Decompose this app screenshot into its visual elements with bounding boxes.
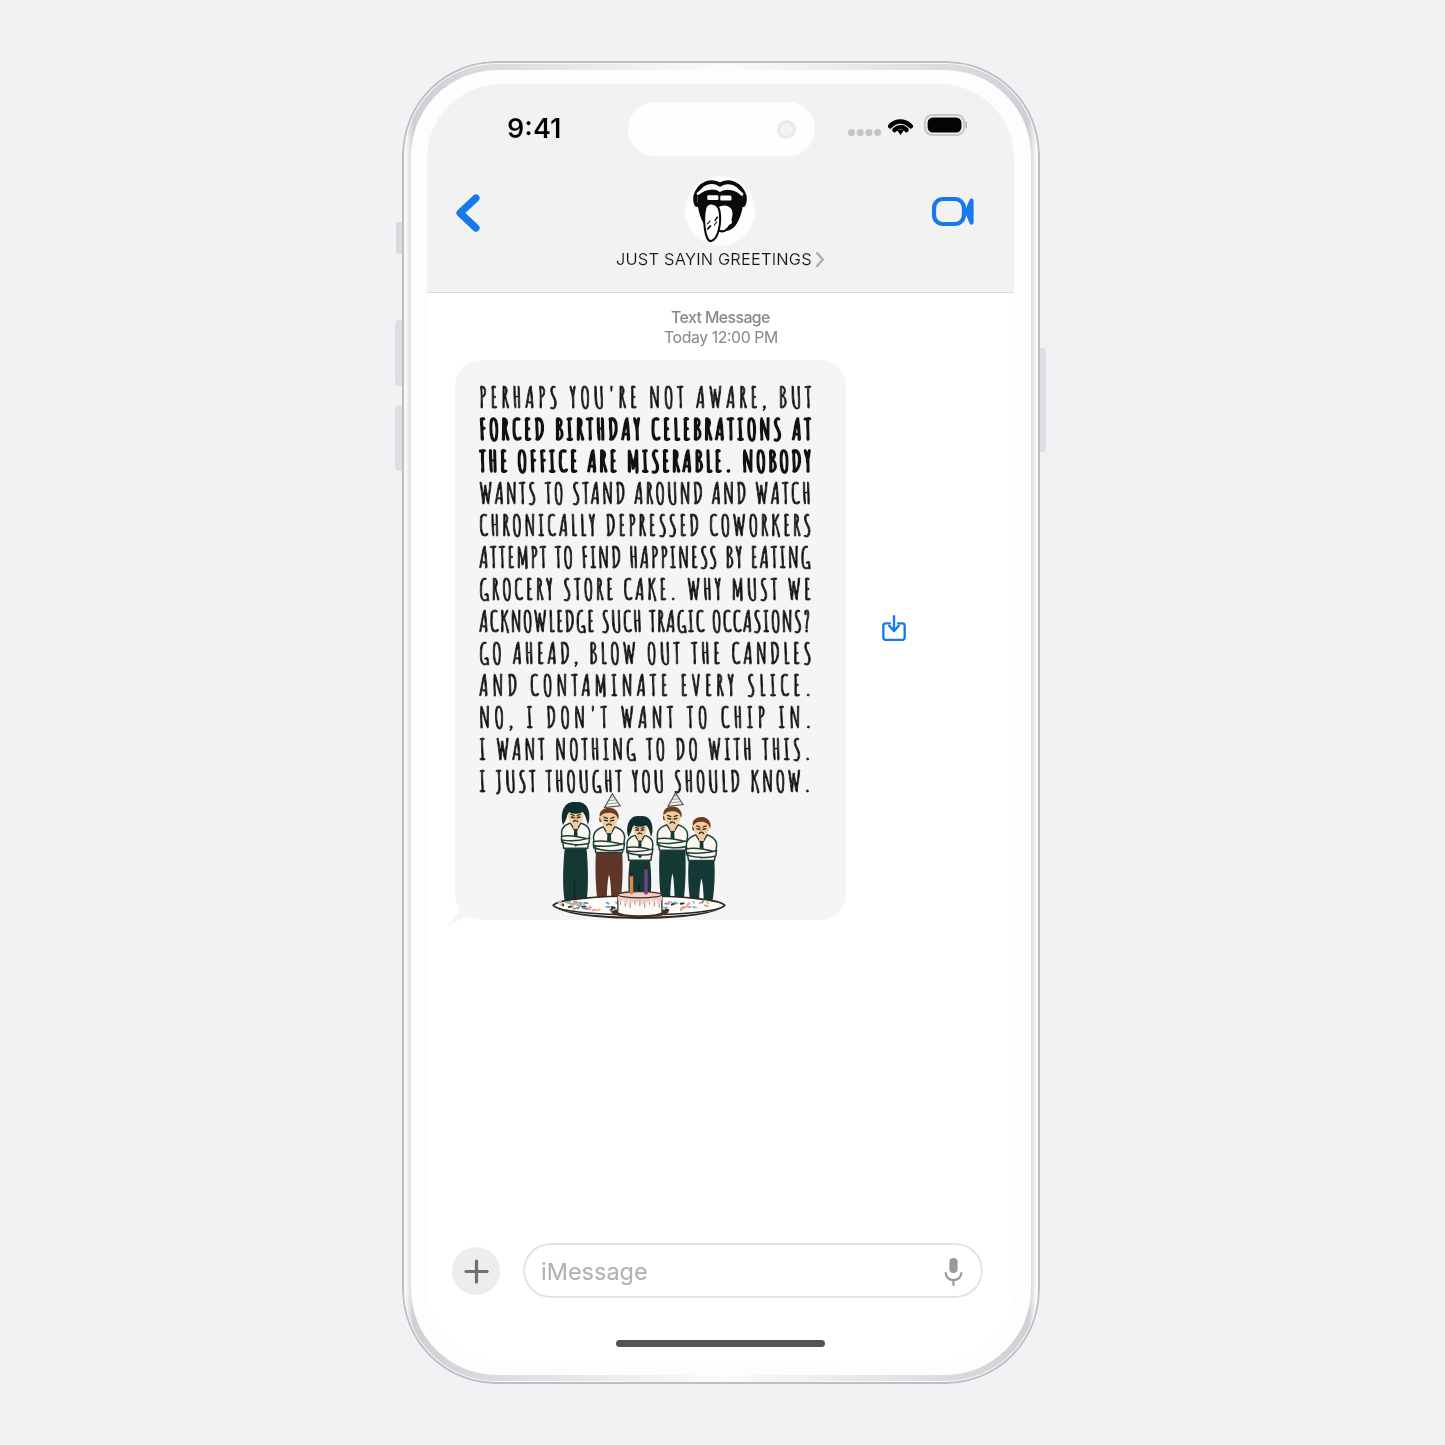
staticText: CHRONICALLY DEPRESSED COWORKERS [479, 508, 814, 540]
staticText: PERHAPS YOU'RE NOT AWARE, BUT [479, 380, 816, 412]
staticText: ACKNOWLEDGE SUCH TRAGIC OCCASIONS? [479, 604, 812, 636]
staticText: GO AHEAD, BLOW OUT THE CANDLES [479, 636, 815, 668]
staticText: CHRONICALLY DEPRESSED COWORKERS [479, 508, 814, 540]
staticText: I JUST THOUGHT YOU SHOULD KNOW. [479, 764, 814, 796]
button[interactable]: Add attachment [452, 1247, 500, 1295]
staticText: NO, I DON'T WANT TO CHIP IN. [479, 700, 817, 732]
staticText: FORCED BIRTHDAY CELEBRATIONS AT [479, 412, 815, 444]
staticText: WANTS TO STAND AROUND AND WATCH [479, 476, 813, 508]
staticText: GO AHEAD, BLOW OUT THE CANDLES [479, 636, 815, 668]
staticText: iMessage [541, 1257, 648, 1285]
staticText: THE OFFICE ARE MISERABLE. NOBODY [479, 444, 814, 476]
staticText: ATTEMPT TO FIND HAPPINESS BY EATING [479, 540, 813, 572]
staticText: GROCERY STORE CAKE. WHY MUST WE [479, 572, 814, 604]
staticText: AND CONTAMINATE EVERY SLICE. [479, 668, 816, 700]
other: Dictate [938, 1256, 968, 1286]
staticText: I JUST THOUGHT YOU SHOULD KNOW. [479, 764, 814, 796]
button[interactable]: FaceTime video call [923, 182, 981, 240]
staticText: Today 12:00 PM [664, 328, 778, 347]
staticText: THE OFFICE ARE MISERABLE. NOBODY [479, 444, 814, 476]
button[interactable]: Save image [869, 602, 919, 652]
staticText: ACKNOWLEDGE SUCH TRAGIC OCCASIONS? [479, 604, 812, 636]
staticText: I WANT NOTHING TO DO WITH THIS. [479, 732, 815, 764]
staticText: PERHAPS YOU'RE NOT AWARE, BUT [479, 380, 816, 412]
staticText: 9:41 [507, 112, 562, 145]
button[interactable]: PERHAPS YOU'RE NOT AWARE, BUT [455, 360, 846, 920]
staticText: I WANT NOTHING TO DO WITH THIS. [479, 732, 815, 764]
staticText: Text Message [671, 308, 770, 327]
staticText: AND CONTAMINATE EVERY SLICE. [479, 668, 816, 700]
staticText: FORCED BIRTHDAY CELEBRATIONS AT [479, 412, 815, 444]
button[interactable]: iMessage [523, 1243, 983, 1298]
staticText: WANTS TO STAND AROUND AND WATCH [479, 476, 813, 508]
staticText: JUST SAYIN GREETINGS [616, 249, 812, 269]
staticText: NO, I DON'T WANT TO CHIP IN. [479, 700, 817, 732]
staticText: GROCERY STORE CAKE. WHY MUST WE [479, 572, 814, 604]
button[interactable]: JUST SAYIN GREETINGS [616, 176, 824, 269]
button[interactable]: Back [439, 184, 497, 242]
staticText: ATTEMPT TO FIND HAPPINESS BY EATING [479, 540, 813, 572]
